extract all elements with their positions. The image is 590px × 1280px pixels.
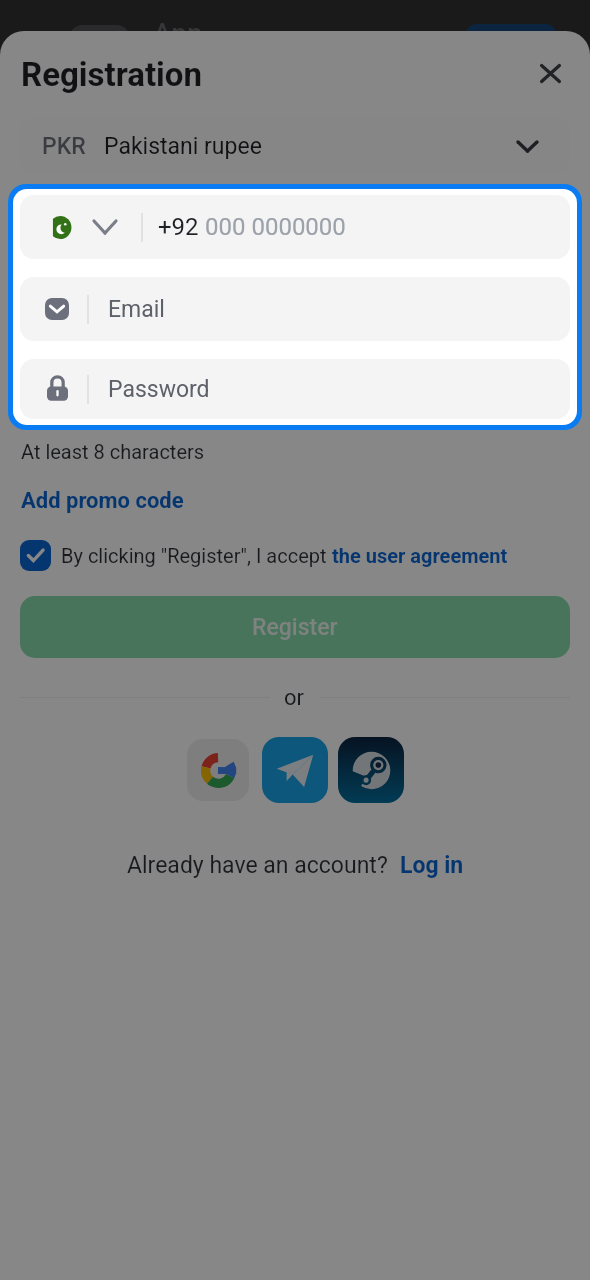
button[interactable]: Sign in with Google bbox=[187, 739, 249, 801]
staticText: Registration bbox=[21, 55, 202, 94]
staticText: At least 8 characters bbox=[21, 440, 205, 463]
button[interactable]: Log in bbox=[400, 852, 464, 879]
staticText: +92 bbox=[158, 213, 205, 241]
staticText: Already have an account? bbox=[127, 852, 400, 879]
staticText: PKR bbox=[42, 133, 86, 160]
staticText: Email bbox=[108, 296, 165, 323]
staticText: Add promo code bbox=[21, 488, 184, 514]
button[interactable]: +92 bbox=[20, 195, 570, 259]
staticText: or bbox=[284, 685, 305, 711]
staticText: Password bbox=[108, 376, 210, 403]
button[interactable]: Email bbox=[20, 277, 570, 341]
button[interactable]: Sign in with Telegram bbox=[262, 737, 328, 803]
button[interactable]: Sign in with Steam bbox=[338, 737, 404, 803]
staticText: the user agreement bbox=[332, 544, 508, 567]
staticText: By clicking "Register", I accept bbox=[61, 544, 332, 567]
staticText: Log in bbox=[400, 852, 464, 879]
button[interactable]: Password bbox=[20, 359, 570, 419]
staticText: 000 0000000 bbox=[205, 213, 346, 241]
button[interactable]: Close bbox=[528, 51, 572, 95]
staticText: App bbox=[153, 17, 203, 50]
button[interactable]: Register bbox=[20, 596, 570, 658]
button[interactable]: By clicking "Register", I accept bbox=[20, 540, 508, 571]
staticText: Pakistani rupee bbox=[104, 133, 262, 160]
button[interactable]: PKR bbox=[20, 118, 570, 174]
staticText: Register bbox=[252, 614, 338, 641]
button[interactable]: Add promo code bbox=[21, 488, 184, 514]
